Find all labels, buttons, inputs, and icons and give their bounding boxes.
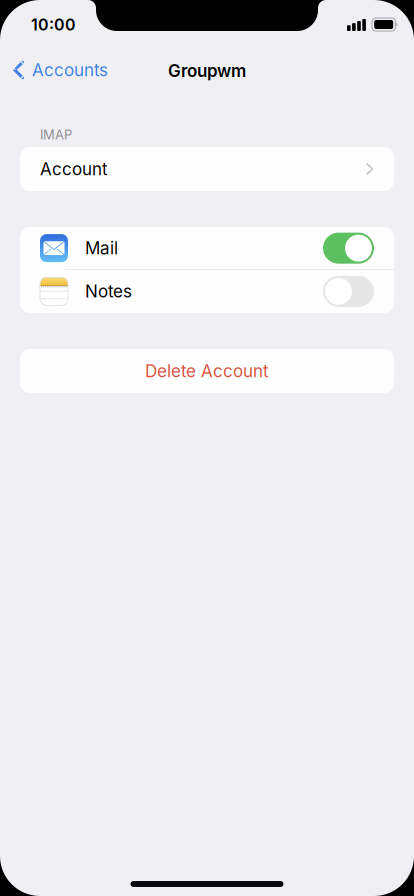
staticText: Delete Account	[145, 361, 269, 381]
button[interactable]: Delete Account	[20, 349, 394, 393]
staticText: 10:00	[31, 15, 76, 34]
staticText: Groupwm	[168, 60, 246, 81]
staticText: IMAP	[40, 127, 72, 143]
staticText: Mail	[85, 238, 118, 258]
staticText: Accounts	[32, 60, 108, 80]
button[interactable]: Account	[20, 147, 394, 191]
staticText: Account	[40, 159, 108, 179]
staticText: Notes	[85, 281, 132, 302]
button[interactable]: Accounts	[0, 44, 116, 88]
